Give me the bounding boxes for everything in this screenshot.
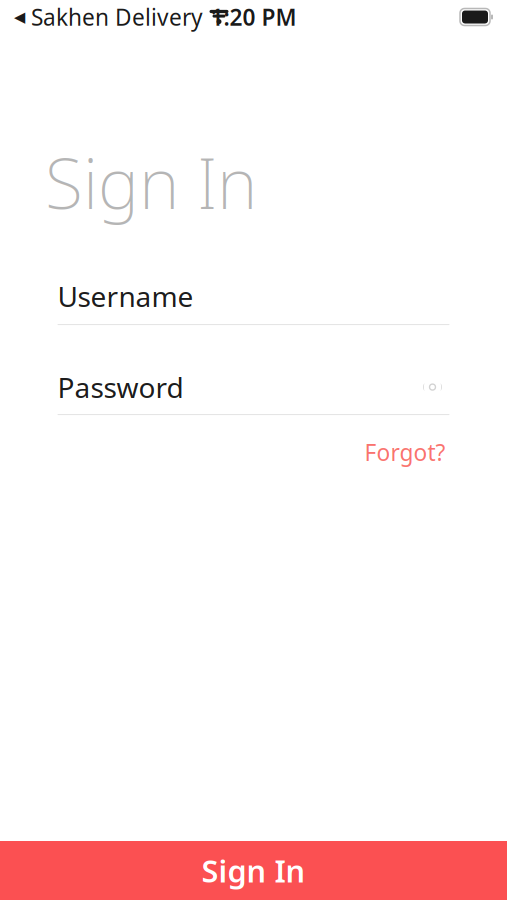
button[interactable]: Show password [415, 372, 449, 402]
staticText: Sakhen Delivery [25, 2, 203, 32]
staticText: Forgot? [364, 437, 445, 467]
staticText: 1:20 PM [210, 2, 296, 32]
staticText: Sign In [201, 850, 305, 891]
button[interactable]: Sign In [0, 841, 507, 900]
staticText: Username [57, 277, 193, 315]
button[interactable]: Forgot? [360, 431, 449, 473]
staticText: Sign In [45, 136, 257, 228]
staticText: ◀ [14, 9, 25, 25]
staticText: Password [57, 368, 183, 406]
